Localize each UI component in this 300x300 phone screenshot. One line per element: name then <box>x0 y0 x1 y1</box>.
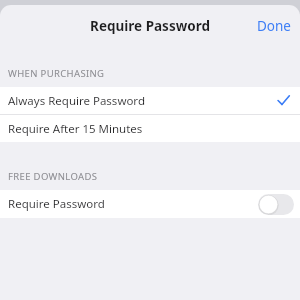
staticText: WHEN PURCHASING <box>8 67 105 80</box>
button[interactable]: Require Password switch, off <box>258 194 294 215</box>
staticText: Require Password <box>8 196 105 212</box>
button[interactable]: Done <box>248 9 300 43</box>
button[interactable]: Require Password <box>0 190 300 218</box>
button[interactable]: Always Require Password <box>0 87 300 114</box>
staticText: Always Require Password <box>8 93 145 109</box>
staticText: Require Password <box>90 17 210 35</box>
staticText: FREE DOWNLOADS <box>8 170 98 183</box>
staticText: Done <box>257 17 291 35</box>
staticText: Require After 15 Minutes <box>8 121 143 137</box>
button[interactable]: Require After 15 Minutes <box>0 115 300 142</box>
